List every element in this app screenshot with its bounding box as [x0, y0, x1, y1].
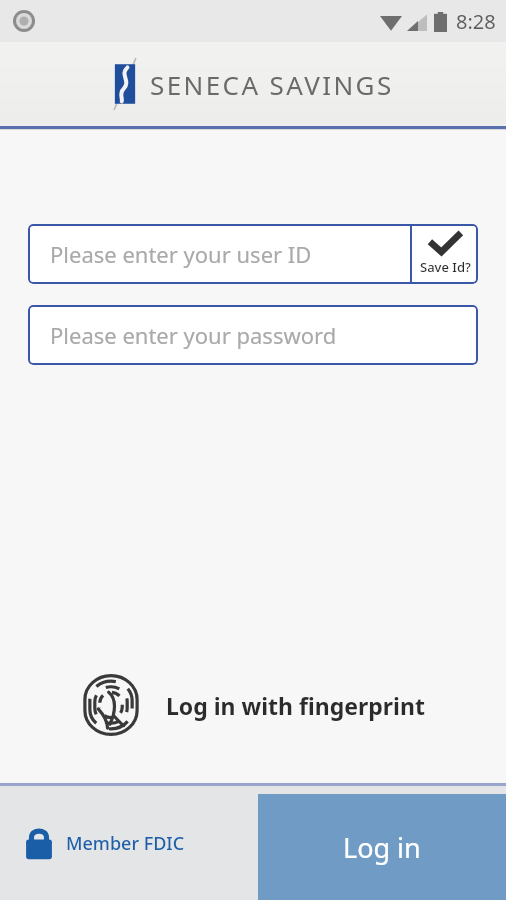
staticText: Member FDIC: [66, 831, 185, 856]
button[interactable]: Log in with fingerprint: [0, 673, 506, 737]
button[interactable]: Please enter your user ID: [28, 224, 478, 284]
staticText: Please enter your password: [50, 320, 337, 350]
staticText: 8:28: [456, 8, 496, 35]
button[interactable]: Save Id: [412, 224, 478, 284]
staticText: Please enter your user ID: [50, 239, 312, 269]
staticText: Save Id?: [420, 258, 471, 276]
button[interactable]: Secure: [24, 826, 185, 860]
other: Secure: [24, 826, 54, 860]
button[interactable]: Log in: [258, 794, 506, 900]
button[interactable]: Please enter your password: [28, 305, 478, 365]
staticText: Log in with fingerprint: [166, 690, 425, 721]
staticText: SENECA SAVINGS: [150, 67, 394, 102]
staticText: Log in: [343, 829, 421, 866]
